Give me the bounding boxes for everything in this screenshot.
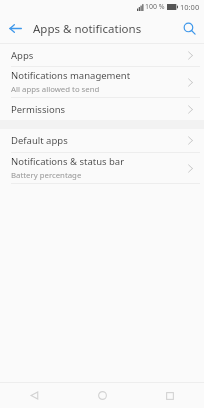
staticText: Battery percentage	[11, 170, 82, 181]
staticText: 10:00	[180, 2, 200, 12]
staticText: Default apps	[11, 134, 68, 147]
button[interactable]: Notifications & status bar	[0, 153, 204, 183]
staticText: Apps & notifications	[33, 21, 142, 37]
button[interactable]: Back	[0, 383, 68, 408]
staticText: Notifications management	[11, 69, 131, 82]
button[interactable]: Apps	[0, 44, 204, 66]
button[interactable]: Recent apps	[136, 383, 204, 408]
staticText: Notifications & status bar	[11, 155, 125, 168]
button[interactable]: Notifications management	[0, 67, 204, 97]
staticText: 100 %	[145, 2, 165, 12]
button[interactable]: Search	[174, 14, 204, 43]
button[interactable]: Home	[68, 383, 136, 408]
staticText: Permissions	[11, 103, 66, 116]
button[interactable]: Permissions	[0, 98, 204, 120]
button[interactable]: Back	[0, 14, 30, 43]
staticText: Apps	[11, 49, 34, 62]
staticText: All apps allowed to send	[11, 84, 100, 95]
button[interactable]: Default apps	[0, 129, 204, 152]
